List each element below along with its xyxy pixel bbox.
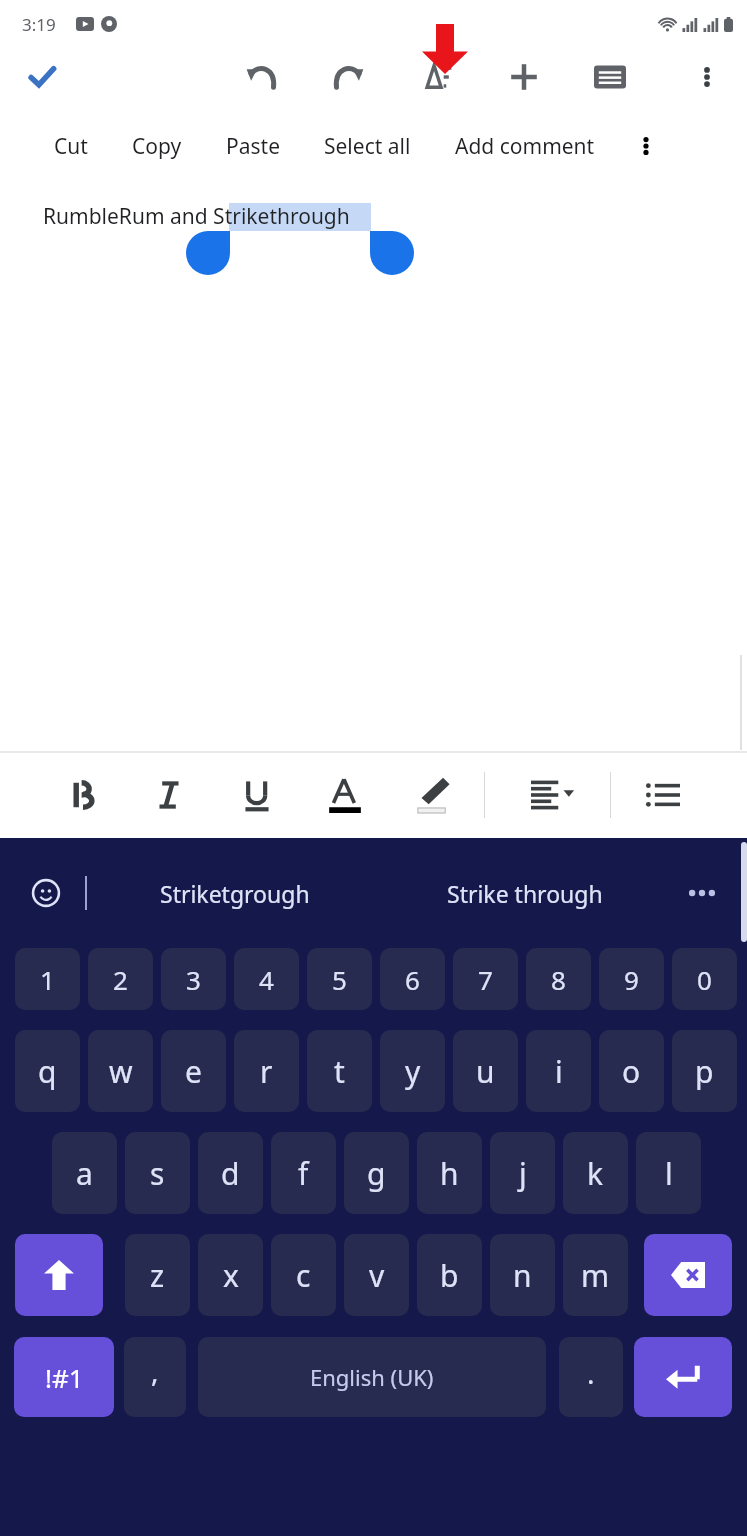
- button[interactable]: c: [271, 1234, 336, 1316]
- button[interactable]: Highlight colour: [408, 770, 458, 820]
- button[interactable]: 7: [453, 948, 518, 1010]
- staticText: e: [185, 1051, 202, 1092]
- button[interactable]: g: [344, 1132, 409, 1214]
- button[interactable]: Selection end handle: [370, 231, 414, 275]
- staticText: l: [665, 1153, 673, 1194]
- button[interactable]: j: [490, 1132, 555, 1214]
- staticText: y: [405, 1051, 421, 1092]
- staticText: 6: [405, 962, 420, 997]
- button[interactable]: 5: [307, 948, 372, 1010]
- button[interactable]: Text format: [412, 53, 460, 101]
- button[interactable]: Done: [18, 53, 66, 101]
- button[interactable]: z: [125, 1234, 190, 1316]
- staticText: d: [221, 1153, 240, 1194]
- button[interactable]: 2: [88, 948, 153, 1010]
- button[interactable]: Paste: [216, 104, 290, 188]
- staticText: Add comment: [455, 132, 595, 161]
- button[interactable]: Emoji: [20, 867, 72, 919]
- button[interactable]: Italic: [144, 770, 194, 820]
- button[interactable]: Select all: [314, 104, 421, 188]
- staticText: h: [440, 1153, 459, 1194]
- staticText: t: [334, 1051, 345, 1092]
- button[interactable]: More menu options: [623, 104, 669, 188]
- button[interactable]: ,: [124, 1337, 186, 1417]
- button[interactable]: 9: [599, 948, 664, 1010]
- button[interactable]: o: [599, 1030, 664, 1112]
- staticText: n: [513, 1255, 532, 1296]
- staticText: Strike through: [447, 878, 603, 909]
- button[interactable]: Backspace: [644, 1234, 732, 1316]
- staticText: English (UK): [310, 1362, 434, 1392]
- staticText: 3: [186, 962, 201, 997]
- button[interactable]: 0: [672, 948, 737, 1010]
- button[interactable]: Strike through: [400, 858, 650, 928]
- staticText: .: [587, 1354, 595, 1392]
- button[interactable]: Cut: [44, 104, 98, 188]
- staticText: a: [76, 1153, 93, 1194]
- button[interactable]: .: [559, 1337, 623, 1417]
- button[interactable]: w: [88, 1030, 153, 1112]
- staticText: 7: [478, 962, 493, 997]
- staticText: j: [519, 1153, 527, 1194]
- button[interactable]: t: [307, 1030, 372, 1112]
- button[interactable]: p: [672, 1030, 737, 1112]
- button[interactable]: 8: [526, 948, 591, 1010]
- button[interactable]: i: [526, 1030, 591, 1112]
- button[interactable]: View mode: [586, 53, 634, 101]
- staticText: 2: [113, 962, 128, 997]
- button[interactable]: 6: [380, 948, 445, 1010]
- button[interactable]: a: [52, 1132, 117, 1214]
- staticText: g: [367, 1153, 386, 1194]
- button[interactable]: Undo: [238, 53, 286, 101]
- button[interactable]: r: [234, 1030, 299, 1112]
- button[interactable]: List: [638, 770, 688, 820]
- button[interactable]: h: [417, 1132, 482, 1214]
- button[interactable]: More suggestions: [679, 870, 725, 916]
- button[interactable]: k: [563, 1132, 628, 1214]
- button[interactable]: Add comment: [445, 104, 605, 188]
- button[interactable]: Shift: [15, 1234, 103, 1316]
- staticText: f: [298, 1153, 309, 1194]
- button[interactable]: Insert: [500, 53, 548, 101]
- button[interactable]: u: [453, 1030, 518, 1112]
- button[interactable]: More options: [683, 53, 731, 101]
- button[interactable]: 4: [234, 948, 299, 1010]
- button[interactable]: f: [271, 1132, 336, 1214]
- staticText: b: [440, 1255, 459, 1296]
- button[interactable]: s: [125, 1132, 190, 1214]
- button[interactable]: 3: [161, 948, 226, 1010]
- button[interactable]: x: [198, 1234, 263, 1316]
- staticText: Cut: [54, 132, 88, 161]
- staticText: p: [695, 1051, 714, 1092]
- staticText: !#1: [45, 1360, 84, 1395]
- staticText: x: [223, 1255, 239, 1296]
- staticText: w: [109, 1051, 133, 1092]
- button[interactable]: Bold: [58, 770, 108, 820]
- button[interactable]: e: [161, 1030, 226, 1112]
- staticText: m: [581, 1255, 610, 1296]
- button[interactable]: Text colour: [320, 770, 370, 820]
- staticText: v: [369, 1255, 385, 1296]
- button[interactable]: !#1: [14, 1337, 114, 1417]
- button[interactable]: l: [636, 1132, 701, 1214]
- staticText: 4: [259, 962, 274, 997]
- button[interactable]: m: [563, 1234, 628, 1316]
- staticText: 0: [697, 962, 712, 997]
- button[interactable]: Copy: [122, 104, 192, 188]
- button[interactable]: v: [344, 1234, 409, 1316]
- button[interactable]: n: [490, 1234, 555, 1316]
- button[interactable]: b: [417, 1234, 482, 1316]
- button[interactable]: Underline: [232, 770, 282, 820]
- button[interactable]: d: [198, 1132, 263, 1214]
- button[interactable]: Alignment: [518, 770, 588, 820]
- button[interactable]: y: [380, 1030, 445, 1112]
- staticText: Striketgrough: [160, 878, 310, 909]
- button[interactable]: Enter: [634, 1337, 732, 1417]
- button[interactable]: Redo: [324, 53, 372, 101]
- button[interactable]: Striketgrough: [120, 858, 350, 928]
- button[interactable]: q: [15, 1030, 80, 1112]
- staticText: c: [296, 1255, 311, 1296]
- button[interactable]: 1: [15, 948, 80, 1010]
- button[interactable]: Selection start handle: [186, 231, 230, 275]
- button[interactable]: English (UK): [198, 1337, 546, 1417]
